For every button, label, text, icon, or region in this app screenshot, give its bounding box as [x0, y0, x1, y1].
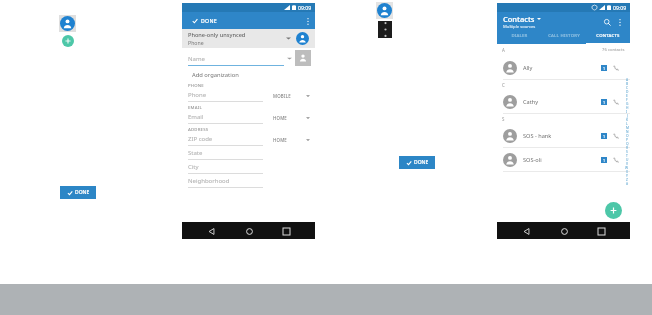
- button[interactable]: Phone-only unsynced: [182, 29, 315, 48]
- staticText: M: [626, 125, 629, 129]
- button[interactable]: Recents: [593, 223, 609, 239]
- button[interactable]: Contacts: [503, 14, 601, 30]
- button[interactable]: More options: [301, 14, 315, 28]
- button[interactable]: DONE: [60, 186, 96, 199]
- button[interactable]: Search: [601, 16, 614, 29]
- staticText: Multiple sources: [503, 24, 536, 30]
- staticText: HOME: [273, 137, 288, 143]
- staticText: P: [626, 137, 628, 141]
- staticText: L: [626, 121, 628, 125]
- button[interactable]: Phone: [188, 91, 263, 102]
- button[interactable]: Add contact: [605, 202, 622, 219]
- button[interactable]: Home: [241, 223, 257, 239]
- staticText: U: [626, 157, 629, 161]
- staticText: 1: [603, 100, 606, 105]
- button[interactable]: SIM 1: [601, 65, 607, 71]
- staticText: D: [626, 89, 629, 93]
- staticText: Phone: [188, 91, 207, 99]
- button[interactable]: Name: [188, 50, 284, 66]
- staticText: Neighborhood: [188, 177, 230, 185]
- staticText: DONE: [414, 159, 429, 166]
- staticText: Name: [188, 55, 205, 63]
- staticText: Email: [188, 113, 204, 121]
- button[interactable]: City: [188, 161, 263, 175]
- button[interactable]: DONE: [192, 17, 217, 24]
- button[interactable]: SIM 1: [601, 157, 607, 163]
- button[interactable]: Call: [612, 156, 620, 164]
- staticText: ZIP code: [188, 135, 213, 143]
- staticText: N: [626, 129, 629, 133]
- button[interactable]: SIM 1: [601, 99, 607, 105]
- staticText: O: [626, 133, 629, 137]
- button[interactable]: HOME: [273, 115, 310, 121]
- button[interactable]: SOS - hank: [497, 124, 630, 147]
- button[interactable]: ZIP code: [188, 135, 263, 146]
- staticText: HOME: [273, 115, 288, 121]
- staticText: EMAIL: [188, 104, 202, 110]
- staticText: Z: [626, 177, 628, 181]
- staticText: Q: [626, 141, 629, 145]
- button[interactable]: Add organization: [192, 68, 315, 81]
- staticText: R: [626, 145, 629, 149]
- button[interactable]: SOS-oli: [497, 148, 630, 171]
- button[interactable]: Call: [612, 98, 620, 106]
- staticText: SOS-oli: [523, 156, 542, 164]
- staticText: #: [626, 181, 629, 185]
- staticText: X: [626, 169, 628, 173]
- button[interactable]: CONTACTS: [586, 32, 630, 38]
- button[interactable]: Recents: [278, 223, 294, 239]
- button[interactable]: Call: [612, 132, 620, 140]
- staticText: DONE: [201, 17, 217, 24]
- button[interactable]: Cathy: [497, 90, 630, 113]
- button[interactable]: Email: [188, 113, 263, 124]
- button[interactable]: State: [188, 147, 263, 161]
- button[interactable]: Add contact: [62, 35, 74, 47]
- button[interactable]: Ally: [497, 56, 630, 79]
- staticText: T: [626, 153, 628, 157]
- staticText: DIALER: [511, 32, 528, 38]
- staticText: 76 contacts: [602, 47, 625, 53]
- staticText: SOS - hank: [523, 132, 552, 140]
- button[interactable]: SIM 1: [601, 133, 607, 139]
- staticText: G: [626, 101, 629, 105]
- staticText: DONE: [75, 189, 90, 196]
- staticText: S: [626, 149, 628, 153]
- staticText: W: [625, 165, 629, 169]
- staticText: MOBILE: [273, 93, 291, 99]
- button[interactable]: CALL HISTORY: [542, 32, 586, 38]
- staticText: CONTACTS: [596, 32, 620, 38]
- staticText: Add organization: [192, 71, 239, 79]
- staticText: C: [502, 82, 505, 88]
- staticText: I: [626, 109, 628, 113]
- button[interactable]: Contact avatar: [376, 2, 393, 19]
- staticText: 1: [603, 66, 606, 71]
- button[interactable]: Neighborhood: [188, 175, 263, 189]
- staticText: Phone-only unsynced: [188, 31, 246, 39]
- button[interactable]: More options: [378, 21, 392, 38]
- staticText: 1: [603, 134, 606, 139]
- button[interactable]: DONE: [399, 156, 435, 169]
- button[interactable]: Back: [518, 223, 534, 239]
- staticText: E: [626, 93, 628, 97]
- staticText: K: [626, 117, 629, 121]
- button[interactable]: More options: [614, 16, 626, 28]
- staticText: ADDRESS: [188, 126, 209, 132]
- staticText: CALL HISTORY: [548, 32, 580, 38]
- staticText: 09:09: [613, 4, 627, 11]
- staticText: B: [626, 81, 629, 85]
- staticText: State: [188, 149, 203, 157]
- button[interactable]: DIALER: [497, 32, 542, 38]
- button[interactable]: Home: [556, 223, 572, 239]
- staticText: 1: [603, 158, 606, 163]
- button[interactable]: Back: [203, 223, 219, 239]
- staticText: PHONE: [188, 82, 204, 88]
- staticText: Ally: [523, 64, 533, 72]
- staticText: Y: [626, 173, 628, 177]
- button[interactable]: Call: [612, 64, 620, 72]
- button[interactable]: Add photo: [295, 50, 311, 66]
- button[interactable]: MOBILE: [273, 93, 310, 99]
- button[interactable]: HOME: [273, 137, 310, 143]
- staticText: City: [188, 163, 199, 171]
- staticText: H: [626, 105, 629, 109]
- button[interactable]: Contact avatar: [59, 15, 76, 32]
